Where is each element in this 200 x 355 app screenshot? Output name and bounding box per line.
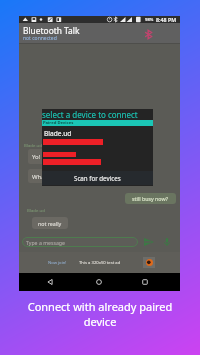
button[interactable]: Advertisement bbox=[19, 252, 180, 273]
staticText: 8:48 PM bbox=[156, 16, 177, 23]
button[interactable]: Bluetooth connect bbox=[141, 27, 155, 41]
staticText: 98% bbox=[145, 17, 154, 23]
button[interactable]: not really bbox=[32, 217, 68, 229]
button[interactable]: Blade.ud bbox=[42, 127, 153, 146]
staticText: Connect with already paired device bbox=[0, 299, 200, 329]
staticText: Type a message bbox=[26, 239, 65, 246]
button[interactable]: Home bbox=[92, 273, 106, 291]
staticText: This a 320x50 test ad bbox=[79, 260, 121, 266]
staticText: Wha bbox=[32, 173, 45, 181]
staticText: not connected bbox=[23, 35, 57, 42]
button[interactable]: Voice message bbox=[160, 235, 173, 248]
staticText: Paired Devices bbox=[43, 120, 74, 126]
button[interactable] bbox=[42, 147, 153, 166]
button[interactable]: Recent apps bbox=[138, 273, 152, 291]
staticText: Now join! bbox=[48, 260, 67, 266]
staticText: Scan for devices bbox=[74, 174, 121, 182]
button[interactable]: Wha bbox=[28, 169, 68, 183]
button[interactable]: still busy now? bbox=[125, 193, 176, 204]
button[interactable]: Send bbox=[142, 235, 155, 248]
button[interactable]: Scan for devices bbox=[42, 171, 153, 185]
button[interactable]: Yo! bbox=[28, 149, 68, 164]
staticText: select a device to connect bbox=[42, 109, 138, 120]
staticText: Blade.ud bbox=[44, 129, 72, 138]
staticText: not really bbox=[38, 220, 62, 227]
staticText: Bluetooth Talk bbox=[23, 25, 80, 36]
button[interactable]: Bluetooth Talk bbox=[19, 23, 180, 44]
staticText: Yo! bbox=[32, 153, 41, 161]
staticText: Blade.ud bbox=[27, 207, 45, 213]
staticText: still busy now? bbox=[132, 195, 169, 202]
staticText: Blade.ud bbox=[24, 142, 42, 148]
button[interactable]: Type a message bbox=[22, 237, 138, 247]
button[interactable]: Back bbox=[43, 273, 57, 291]
